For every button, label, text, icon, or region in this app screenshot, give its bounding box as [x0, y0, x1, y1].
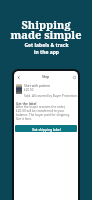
staticText: Get shipping label — [32, 127, 61, 131]
staticText: Shipping — [21, 17, 71, 32]
staticText: Get the label — [16, 101, 37, 105]
staticText: £20.00 — [24, 88, 34, 92]
staticText: made simple — [10, 27, 82, 42]
button[interactable]: Back — [15, 74, 21, 80]
staticText: Sold. All covered by Buyer Protection. — [24, 94, 78, 98]
staticText: After the buyer receives the order, £20.… — [16, 105, 72, 121]
staticText: Shirt with pattern — [24, 84, 51, 88]
staticText: Get labels & track in the app — [24, 42, 69, 55]
button[interactable]: Get shipping label — [15, 125, 77, 132]
staticText: Ship — [42, 74, 50, 79]
button[interactable]: Help — [71, 74, 77, 80]
